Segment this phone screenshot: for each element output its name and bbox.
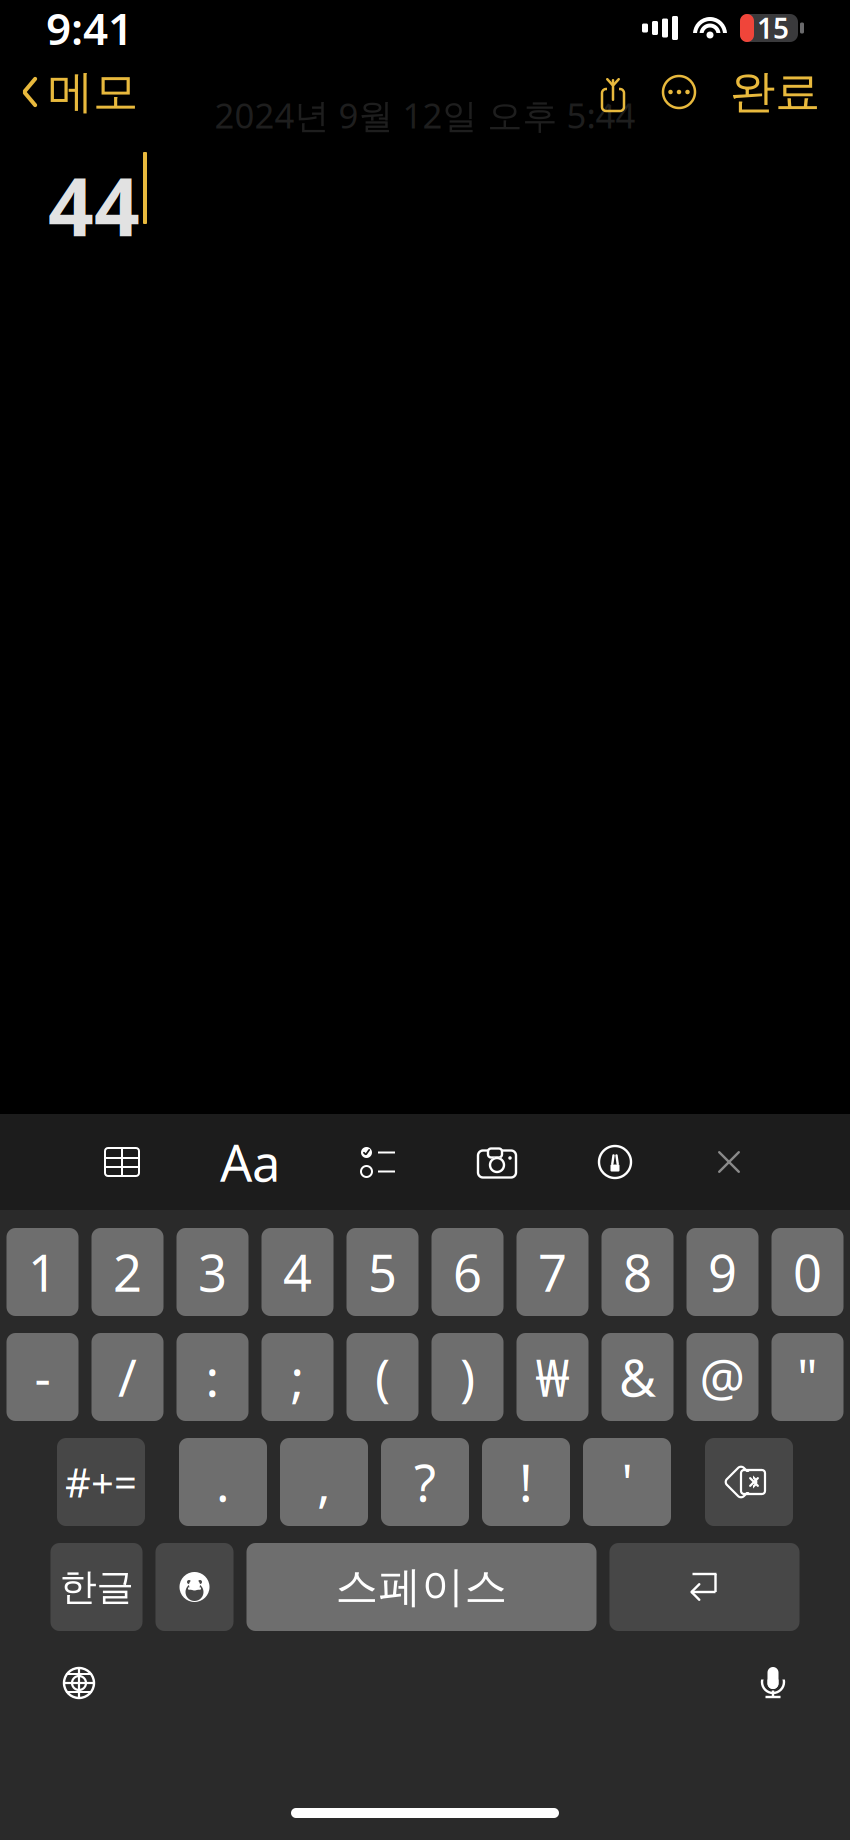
staticText: ₩ bbox=[535, 1343, 569, 1411]
button[interactable]: , bbox=[280, 1438, 368, 1526]
staticText: 3 bbox=[198, 1238, 227, 1306]
staticText: 스페이스 bbox=[335, 1561, 507, 1613]
staticText: Aa bbox=[220, 1128, 280, 1196]
button[interactable]: 2 bbox=[91, 1228, 163, 1316]
button[interactable]: 메모 bbox=[0, 56, 138, 128]
button[interactable]: 서식 bbox=[220, 1128, 280, 1196]
button[interactable]: ₩ bbox=[516, 1333, 588, 1421]
staticText: - bbox=[34, 1343, 50, 1411]
button[interactable]: 카메라 bbox=[476, 1145, 518, 1179]
staticText: 한글 bbox=[59, 1564, 133, 1610]
staticText: 9:41 bbox=[46, 0, 133, 57]
button[interactable]: ; bbox=[261, 1333, 333, 1421]
staticText: 1 bbox=[28, 1238, 57, 1306]
staticText: & bbox=[619, 1343, 656, 1411]
button[interactable]: 표 bbox=[104, 1147, 140, 1177]
staticText: ! bbox=[519, 1448, 533, 1516]
staticText: #+= bbox=[65, 1455, 137, 1508]
button[interactable]: . bbox=[179, 1438, 267, 1526]
button[interactable]: / bbox=[91, 1333, 163, 1421]
staticText: 완료 bbox=[730, 64, 820, 120]
staticText: 2 bbox=[113, 1238, 142, 1306]
staticText: ) bbox=[460, 1343, 475, 1411]
button[interactable]: 삭제 bbox=[705, 1438, 793, 1526]
staticText: ? bbox=[414, 1448, 436, 1516]
staticText: : bbox=[205, 1343, 219, 1411]
button[interactable]: @ bbox=[686, 1333, 758, 1421]
staticText: 2024년 9월 12일 오후 5:44 bbox=[214, 92, 635, 138]
staticText: 15 bbox=[757, 9, 789, 47]
button[interactable]: 1 bbox=[6, 1228, 78, 1316]
button[interactable]: : bbox=[176, 1333, 248, 1421]
button[interactable]: ? bbox=[381, 1438, 469, 1526]
staticText: ' bbox=[621, 1448, 632, 1516]
button[interactable]: 9 bbox=[686, 1228, 758, 1316]
button[interactable]: & bbox=[601, 1333, 673, 1421]
button[interactable]: 한글 bbox=[50, 1543, 142, 1631]
staticText: / bbox=[118, 1343, 137, 1411]
button[interactable]: ! bbox=[482, 1438, 570, 1526]
button[interactable]: ' bbox=[583, 1438, 671, 1526]
button[interactable]: 4 bbox=[261, 1228, 333, 1316]
button[interactable]: #+= bbox=[57, 1438, 145, 1526]
button[interactable]: ( bbox=[346, 1333, 418, 1421]
button[interactable]: 받아쓰기 bbox=[758, 1665, 788, 1701]
staticText: 5 bbox=[368, 1238, 397, 1306]
staticText: 0 bbox=[793, 1238, 822, 1306]
button[interactable]: 7 bbox=[516, 1228, 588, 1316]
button[interactable]: 이모티콘 bbox=[155, 1543, 233, 1631]
button[interactable]: ) bbox=[431, 1333, 503, 1421]
button[interactable]: 스페이스 bbox=[246, 1543, 596, 1631]
staticText: 8 bbox=[623, 1238, 652, 1306]
button[interactable]: 마크업 bbox=[598, 1145, 632, 1179]
button[interactable]: 5 bbox=[346, 1228, 418, 1316]
button[interactable]: 0 bbox=[771, 1228, 843, 1316]
staticText: 6 bbox=[453, 1238, 482, 1306]
staticText: ( bbox=[375, 1343, 390, 1411]
staticText: ; bbox=[290, 1343, 304, 1411]
staticText: 4 bbox=[283, 1238, 312, 1306]
button[interactable]: 줄바꿈 bbox=[609, 1543, 799, 1631]
button[interactable]: 체크리스트 bbox=[360, 1145, 396, 1179]
button[interactable]: 닫기 bbox=[712, 1145, 746, 1179]
staticText: @ bbox=[699, 1343, 745, 1411]
button[interactable]: 6 bbox=[431, 1228, 503, 1316]
button[interactable]: 8 bbox=[601, 1228, 673, 1316]
staticText: " bbox=[797, 1343, 818, 1411]
staticText: , bbox=[317, 1448, 331, 1516]
button[interactable]: " bbox=[771, 1333, 843, 1421]
button[interactable]: 완료 bbox=[714, 56, 836, 128]
staticText: . bbox=[216, 1448, 230, 1516]
button[interactable]: 다음 키보드 bbox=[62, 1666, 96, 1700]
staticText: 9 bbox=[708, 1238, 737, 1306]
button[interactable]: - bbox=[6, 1333, 78, 1421]
staticText: 7 bbox=[538, 1238, 567, 1306]
staticText: 44 bbox=[48, 152, 140, 258]
button[interactable]: 더 보기 bbox=[644, 75, 714, 109]
staticText: 메모 bbox=[48, 64, 138, 120]
button[interactable]: 공유 bbox=[582, 74, 644, 110]
button[interactable]: 3 bbox=[176, 1228, 248, 1316]
